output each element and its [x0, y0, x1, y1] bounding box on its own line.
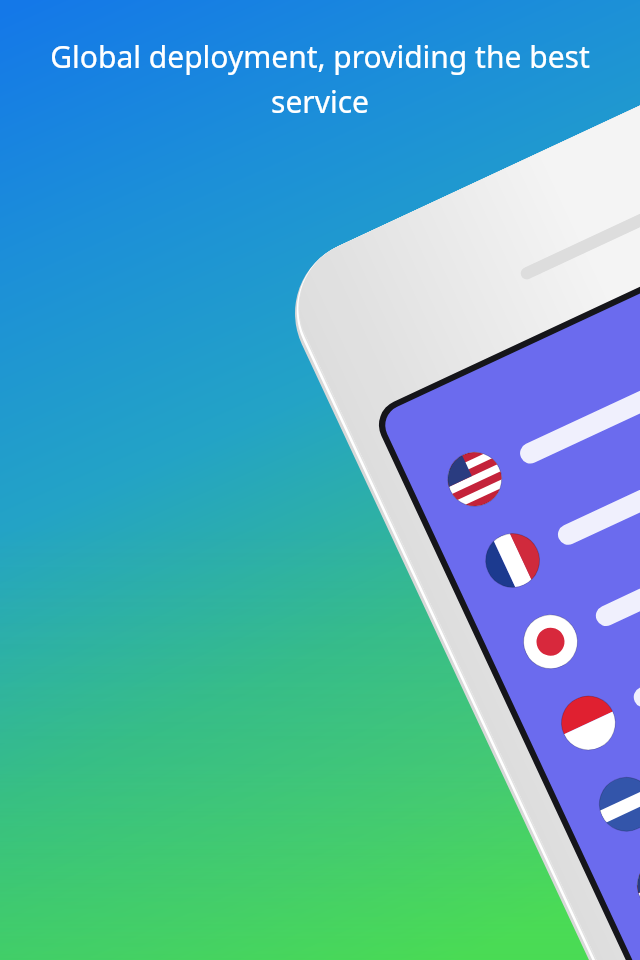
button[interactable]: Global deployment, providing the best se… [22, 36, 618, 122]
staticText: Global deployment, providing the best se… [22, 36, 618, 122]
